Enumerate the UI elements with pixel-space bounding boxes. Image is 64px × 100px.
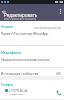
staticText: имя и фамилию контакта xyxy=(4,17,37,21)
staticText: Телефон xyxy=(1,83,13,87)
staticText: +7 978 45-44 xyxy=(9,89,28,93)
button[interactable]: Онлайн xyxy=(0,21,64,32)
button[interactable]: Call xyxy=(55,89,61,95)
button[interactable]: Уведомления пользовательские xyxy=(0,58,64,64)
staticText: Уведомления пользовательские xyxy=(1,58,50,62)
staticText: Онлайн xyxy=(1,25,13,29)
staticText: Привет! Я использую WhatsApp. xyxy=(1,32,50,36)
button[interactable]: +7 978 45-44 xyxy=(0,88,64,97)
staticText: Исчезающие сообщения xyxy=(1,72,39,76)
button[interactable]: Back xyxy=(0,8,7,15)
staticText: Редактировать xyxy=(4,12,38,18)
staticText: Медиафайлы xyxy=(1,51,22,55)
button[interactable]: Медиафайлы xyxy=(0,46,64,58)
button[interactable]: Исчезающие сообщения xyxy=(0,68,64,76)
button[interactable]: More options xyxy=(57,8,63,14)
button[interactable]: Привет! Я использую WhatsApp. xyxy=(0,32,64,39)
staticText: последний раз вчера xyxy=(34,26,61,30)
staticText: Мобильный xyxy=(9,92,23,95)
